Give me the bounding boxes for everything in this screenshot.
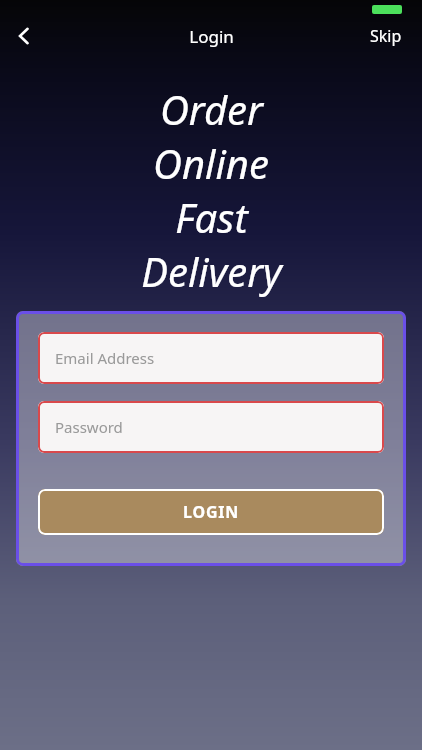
staticText: Email Address <box>55 348 155 368</box>
staticText: Order <box>160 82 263 136</box>
button[interactable]: Back <box>0 12 48 60</box>
staticText: Skip <box>370 25 402 47</box>
staticText: LOGIN <box>183 501 240 523</box>
button[interactable]: LOGIN <box>38 489 384 535</box>
button[interactable]: Email Address <box>38 332 384 384</box>
staticText: Password <box>55 417 123 437</box>
staticText: Online <box>153 136 269 190</box>
button[interactable]: Skip <box>350 13 422 59</box>
staticText: Fast <box>175 190 248 244</box>
staticText: Delivery <box>141 244 282 298</box>
staticText: Login <box>189 25 234 48</box>
button[interactable]: Password <box>38 401 384 453</box>
